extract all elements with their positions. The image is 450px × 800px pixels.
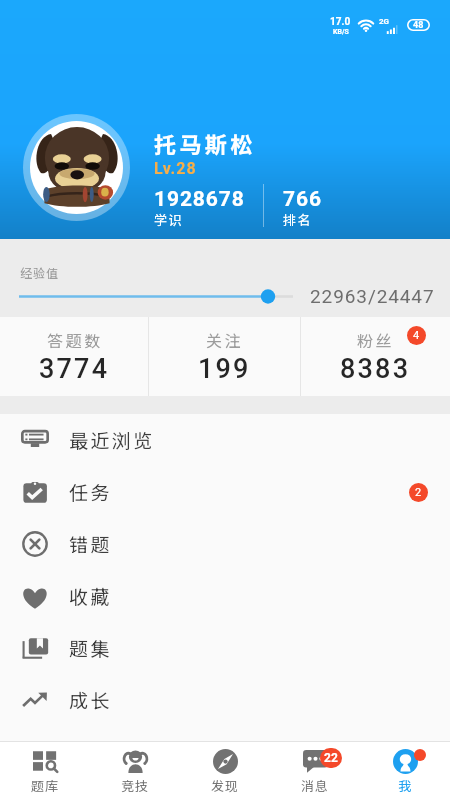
staticText: 4 [413,329,420,342]
staticText: 199 [198,353,251,385]
staticText: 1928678 [154,187,245,212]
staticText: 错题 [69,530,112,558]
staticText: 任务 [69,478,112,506]
staticText: 学识 [154,210,184,229]
button[interactable]: 22 [270,742,360,800]
staticText: 发现 [211,776,240,795]
button[interactable]: 关注 [149,317,300,396]
staticText: 我 [398,776,413,795]
staticText: 关注 [206,328,244,351]
button[interactable]: 我 [360,742,450,800]
staticText: KB/S [333,28,349,36]
staticText: 排名 [283,210,313,229]
staticText: 17.0 [330,16,351,28]
button[interactable]: 发现 [180,742,270,800]
staticText: 成长 [69,686,112,714]
staticText: 题集 [69,634,112,662]
button[interactable]: 错题 [0,518,450,570]
staticText: 8383 [340,353,411,385]
staticText: 托马斯松 [154,127,256,159]
staticText: 消息 [301,776,330,795]
button[interactable]: 答题数 [0,317,148,396]
button[interactable]: 成长 [0,674,450,726]
staticText: 48 [413,20,424,31]
staticText: 粉丝 [357,328,395,351]
button[interactable]: 任务 [0,466,450,518]
button[interactable]: 最近浏览 [0,414,450,466]
button[interactable]: 竞技 [90,742,180,800]
button[interactable]: 收藏 [0,570,450,622]
button[interactable]: 题集 [0,622,450,674]
staticText: 收藏 [69,582,112,610]
staticText: 2G [379,17,390,26]
button[interactable]: 题库 [0,742,90,800]
staticText: 答题数 [47,328,103,351]
staticText: 766 [283,187,322,212]
staticText: 22 [324,751,338,765]
button[interactable]: 粉丝 [301,317,450,396]
staticText: 3774 [39,353,110,385]
staticText: Lv.28 [154,159,197,178]
staticText: 22963/24447 [310,285,435,307]
staticText: 经验值 [20,264,60,281]
staticText: 最近浏览 [69,426,155,454]
staticText: 竞技 [121,776,150,795]
staticText: 2 [415,486,422,499]
staticText: 题库 [31,776,60,795]
